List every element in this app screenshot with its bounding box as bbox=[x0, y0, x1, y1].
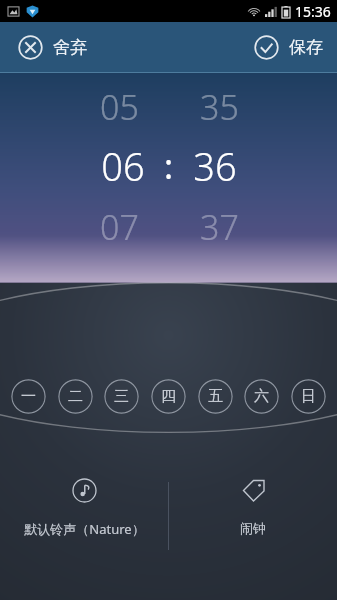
staticText: 05 bbox=[100, 84, 139, 130]
staticText: 保存 bbox=[289, 37, 323, 58]
staticText: 闹钟 bbox=[240, 520, 266, 536]
staticText: 37 bbox=[200, 204, 239, 250]
button[interactable]: 06 bbox=[94, 140, 152, 192]
staticText: 36 bbox=[193, 140, 237, 192]
staticText: : bbox=[164, 143, 174, 189]
button[interactable]: 五 bbox=[198, 379, 233, 414]
button[interactable]: 三 bbox=[104, 379, 139, 414]
button[interactable]: 四 bbox=[151, 379, 186, 414]
button[interactable]: 日 bbox=[291, 379, 326, 414]
staticText: 35 bbox=[200, 84, 239, 130]
staticText: 15:36 bbox=[295, 2, 331, 21]
staticText: 六 bbox=[254, 387, 269, 406]
staticText: 舍弃 bbox=[53, 37, 87, 58]
staticText: 06 bbox=[101, 140, 145, 192]
button[interactable]: 二 bbox=[58, 379, 93, 414]
staticText: 默认铃声（Nature） bbox=[24, 520, 145, 538]
other: Ringtone bbox=[72, 478, 97, 503]
staticText: 三 bbox=[114, 387, 129, 406]
staticText: 一 bbox=[21, 387, 36, 406]
staticText: 四 bbox=[161, 387, 176, 406]
button[interactable]: Ringtone bbox=[0, 478, 168, 554]
button[interactable]: 36 bbox=[186, 140, 244, 192]
staticText: 五 bbox=[208, 387, 223, 406]
button[interactable]: 舍弃 bbox=[0, 27, 105, 68]
button[interactable]: 六 bbox=[244, 379, 279, 414]
staticText: 日 bbox=[301, 387, 316, 406]
other: Label bbox=[241, 478, 266, 503]
staticText: 07 bbox=[100, 204, 139, 250]
button[interactable]: 一 bbox=[11, 379, 46, 414]
staticText: 二 bbox=[68, 387, 83, 406]
button[interactable]: 保存 bbox=[236, 27, 337, 68]
button[interactable]: Label bbox=[169, 478, 337, 554]
